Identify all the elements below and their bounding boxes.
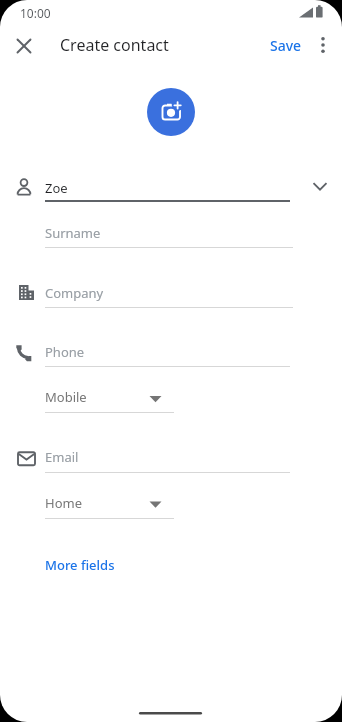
button[interactable] [300,172,340,202]
button[interactable]: More fields [40,552,120,578]
staticText: Create contact [60,34,169,56]
staticText: Save [270,36,302,55]
staticText: More fields [45,556,115,574]
staticText: Zoe [45,179,68,197]
button[interactable]: Zoe [45,175,290,201]
button[interactable]: Email [45,444,290,468]
staticText: Surname [45,224,101,242]
staticText: Home [45,494,82,512]
staticText: Company [45,284,104,302]
button[interactable]: Phone [45,339,290,363]
button[interactable] [306,28,340,62]
button[interactable]: Surname [45,220,293,244]
button[interactable]: Save [261,30,311,60]
button[interactable]: Home [45,490,174,514]
button[interactable]: Company [45,280,293,304]
staticText: Mobile [45,388,87,406]
button[interactable] [147,88,195,136]
staticText: 10:00 [20,5,51,21]
staticText: Email [45,448,79,466]
button[interactable] [4,26,44,66]
button[interactable]: Mobile [45,384,174,408]
staticText: Phone [45,343,85,361]
